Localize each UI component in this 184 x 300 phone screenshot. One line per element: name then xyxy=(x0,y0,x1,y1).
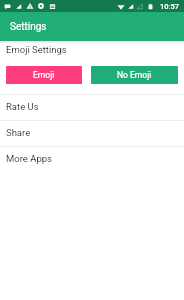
staticText: Emoji xyxy=(33,70,55,80)
button[interactable]: Rate Us xyxy=(0,94,184,120)
staticText: More Apps xyxy=(6,153,53,164)
staticText: No Emoji xyxy=(117,70,152,80)
button[interactable]: No Emoji xyxy=(91,66,178,84)
button[interactable]: More Apps xyxy=(0,146,184,172)
staticText: Share xyxy=(6,127,31,138)
button[interactable]: Share xyxy=(0,120,184,146)
button[interactable]: Emoji xyxy=(6,66,82,84)
staticText: Emoji Settings xyxy=(6,44,67,55)
staticText: Rate Us xyxy=(6,101,39,112)
staticText: Settings xyxy=(10,21,47,33)
staticText: 10:57 xyxy=(160,2,180,11)
